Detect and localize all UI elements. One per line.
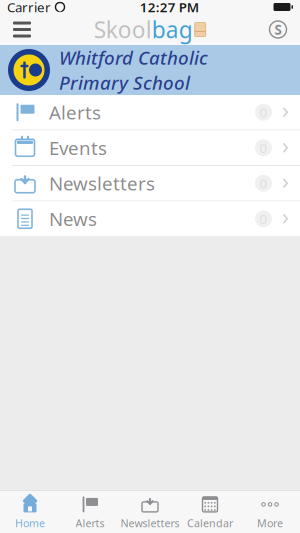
staticText: Events bbox=[49, 135, 107, 160]
staticText: bag bbox=[152, 14, 193, 44]
staticText: 0 bbox=[259, 103, 267, 121]
staticText: Calendar bbox=[187, 516, 233, 530]
button[interactable]: Menu bbox=[0, 14, 44, 45]
button[interactable]: Newsletters bbox=[0, 166, 300, 200]
button[interactable]: Calendar bbox=[180, 491, 240, 533]
staticText: Skool bbox=[94, 14, 152, 44]
button[interactable]: Newsletters bbox=[120, 491, 180, 533]
staticText: Alerts bbox=[49, 100, 101, 125]
button[interactable]: Alerts bbox=[0, 95, 300, 129]
staticText: Newsletters bbox=[49, 171, 155, 196]
staticText: 0 bbox=[259, 210, 267, 228]
staticText: More bbox=[257, 516, 283, 530]
staticText: S bbox=[274, 21, 281, 38]
staticText: 0 bbox=[259, 139, 267, 157]
staticText: Whitford Catholic bbox=[59, 45, 208, 70]
staticText: Primary School bbox=[59, 70, 190, 95]
staticText: Home bbox=[15, 516, 45, 530]
button[interactable]: Events bbox=[0, 130, 300, 165]
staticText: News bbox=[49, 206, 97, 231]
button[interactable]: Refresh bbox=[256, 14, 300, 45]
button[interactable]: News bbox=[0, 201, 300, 236]
staticText: 12:27 PM bbox=[140, 0, 199, 16]
button[interactable]: More bbox=[240, 491, 300, 533]
staticText: Carrier bbox=[7, 0, 51, 16]
staticText: 0 bbox=[259, 174, 267, 192]
button[interactable]: Alerts bbox=[60, 491, 120, 533]
staticText: Newsletters bbox=[120, 516, 179, 530]
button[interactable]: Home bbox=[0, 491, 60, 533]
staticText: Alerts bbox=[75, 516, 104, 530]
